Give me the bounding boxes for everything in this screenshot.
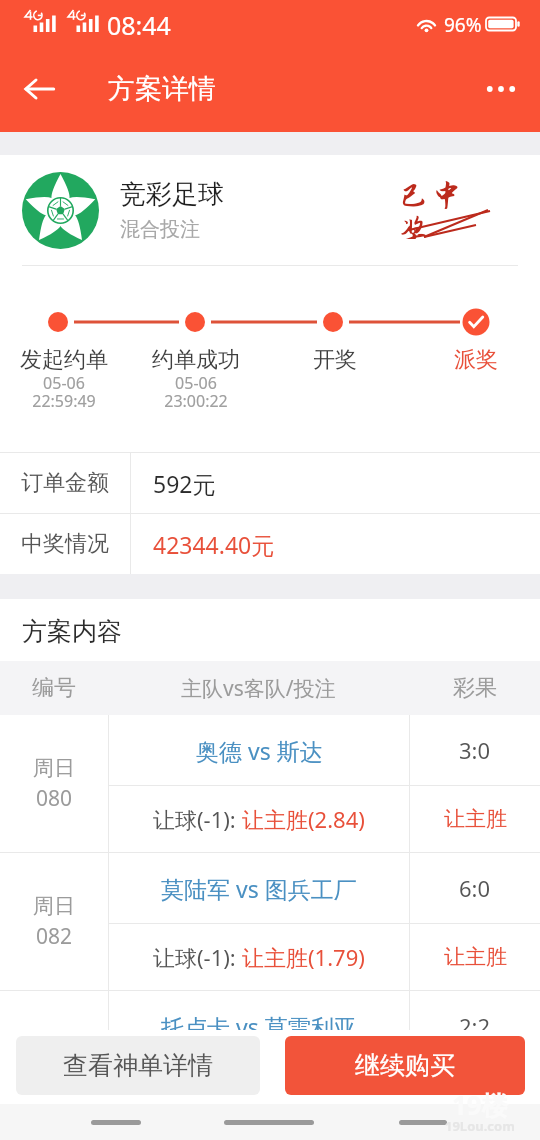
- button[interactable]: 查看神单详情: [16, 1036, 260, 1095]
- staticText: 让主胜(2.84): [242, 804, 365, 834]
- staticText: 订单金额: [21, 469, 109, 497]
- staticText: 发起约单: [20, 346, 108, 374]
- staticText: 约单成功: [152, 346, 240, 374]
- staticText: 开奖: [313, 346, 357, 374]
- staticText: 42344.40元: [153, 529, 275, 560]
- staticText: 让球(-1):: [153, 804, 242, 834]
- staticText: 6:0: [459, 873, 491, 903]
- staticText: 让球(-1):: [153, 942, 242, 972]
- staticText: 19Lou.com: [445, 1117, 515, 1135]
- button[interactable]: 主页: [212, 1108, 326, 1136]
- staticText: 查看神单详情: [63, 1050, 213, 1081]
- staticText: 3:0: [459, 735, 491, 765]
- staticText: 彩果: [453, 674, 497, 702]
- staticText: 竞彩足球: [120, 178, 224, 211]
- button[interactable]: 继续购买: [285, 1036, 525, 1095]
- staticText: 让主胜: [444, 944, 507, 970]
- staticText: 05-06 23:00:22: [164, 372, 228, 412]
- staticText: 让主胜(1.79): [242, 942, 365, 972]
- button[interactable]: 更多选项: [472, 60, 530, 118]
- staticText: 方案内容: [22, 616, 122, 647]
- staticText: 592元: [153, 468, 216, 499]
- staticText: 周日 082: [33, 893, 75, 950]
- staticText: 继续购买: [355, 1050, 455, 1081]
- staticText: 主队vs客队/投注: [181, 674, 336, 703]
- staticText: 19楼: [452, 1087, 508, 1123]
- staticText: 编号: [32, 674, 76, 702]
- button[interactable]: 返回: [8, 58, 70, 120]
- button[interactable]: 最近任务: [387, 1108, 459, 1136]
- staticText: 让主胜: [444, 806, 507, 832]
- staticText: 96%: [444, 12, 482, 38]
- staticText: 周日 080: [33, 755, 75, 812]
- staticText: 混合投注: [120, 217, 200, 242]
- staticText: 方案详情: [108, 72, 216, 106]
- button[interactable]: 返回: [79, 1108, 153, 1136]
- staticText: 托卢卡 vs 莫雷利亚: [161, 1011, 357, 1030]
- staticText: 已中奖: [397, 177, 495, 239]
- staticText: 05-06 22:59:49: [32, 372, 96, 412]
- staticText: 莫陆军 vs 图兵工厂: [161, 873, 357, 904]
- staticText: 2:2: [459, 1011, 491, 1030]
- staticText: 08:44: [107, 8, 171, 42]
- staticText: 派奖: [454, 346, 498, 374]
- staticText: 中奖情况: [21, 530, 109, 558]
- staticText: 奥德 vs 斯达: [196, 735, 323, 766]
